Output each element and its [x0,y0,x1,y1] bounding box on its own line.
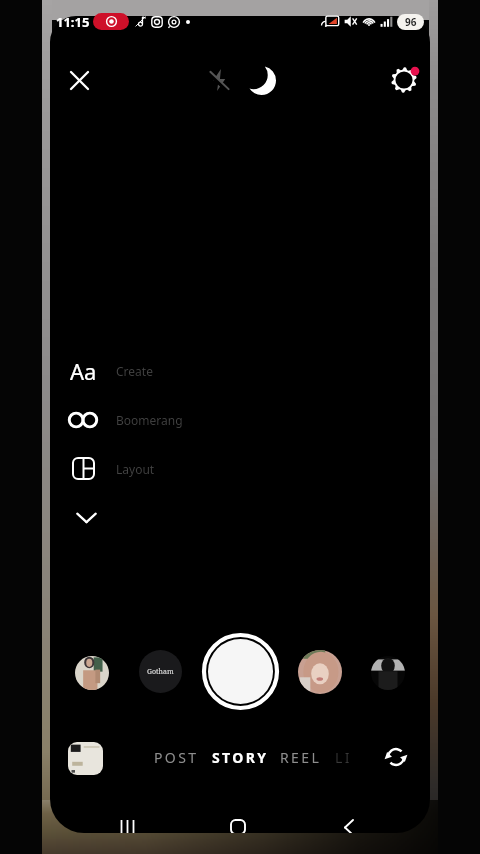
staticText: 11:15 [56,13,90,31]
button[interactable]: REEL [280,742,322,772]
staticText: Aa [70,356,97,386]
staticText: REEL [280,748,322,767]
staticText: LI [335,748,352,767]
button[interactable]: Recents [105,805,149,833]
button[interactable]: Capture [202,633,279,710]
button[interactable]: POST [154,742,199,772]
button[interactable]: Back [327,805,371,833]
staticText: Boomerang [116,412,183,428]
button[interactable]: Home [216,805,260,833]
button[interactable]: STORY [212,742,269,772]
staticText: Gotham [147,667,174,677]
button[interactable]: Effect [298,650,342,694]
button[interactable]: Settings [379,55,429,105]
button[interactable]: More [50,493,122,542]
button[interactable]: Flash off [194,55,244,105]
staticText: POST [154,748,199,767]
button[interactable]: Gotham [139,650,182,693]
staticText: Create [116,363,153,379]
button[interactable]: Gallery [68,742,103,775]
button[interactable]: Night mode [236,55,286,105]
button[interactable]: Aa [50,346,260,395]
button[interactable]: Boomerang [50,395,260,444]
button[interactable]: Close [54,55,104,105]
staticText: STORY [212,748,269,767]
button[interactable]: Effect [371,656,405,690]
button[interactable]: LI [335,742,352,772]
button[interactable]: Layout [50,444,260,493]
staticText: Layout [116,461,155,477]
button[interactable]: Effect [75,656,109,690]
button[interactable]: Flip camera [374,735,418,779]
staticText: 96 [405,15,417,29]
